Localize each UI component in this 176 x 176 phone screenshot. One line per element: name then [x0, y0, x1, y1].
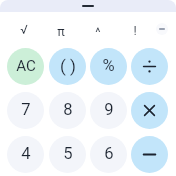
button[interactable]: AC — [7, 48, 44, 85]
staticText: 7 — [21, 100, 31, 119]
staticText: √ — [20, 22, 28, 37]
staticText: ( ) — [60, 56, 76, 76]
staticText: ^ — [95, 25, 101, 40]
button[interactable]: ^ — [87, 21, 109, 43]
button[interactable]: Multiply — [131, 92, 168, 129]
staticText: AC — [16, 57, 36, 75]
button[interactable]: 4 — [7, 136, 44, 173]
staticText: 9 — [104, 100, 114, 119]
button[interactable]: ( ) — [49, 48, 86, 85]
button[interactable]: Minus — [131, 136, 168, 173]
staticText: 5 — [63, 144, 73, 163]
button[interactable]: 6 — [90, 136, 127, 173]
staticText: 6 — [104, 144, 114, 163]
button[interactable]: More keys — [156, 23, 168, 35]
button[interactable]: 5 — [49, 136, 86, 173]
button[interactable]: π — [50, 20, 72, 42]
staticText: 4 — [21, 144, 31, 163]
button[interactable]: 7 — [7, 92, 44, 129]
staticText: 8 — [63, 100, 73, 119]
button[interactable]: 9 — [90, 92, 127, 129]
staticText: π — [57, 24, 65, 39]
button[interactable]: % — [90, 48, 127, 85]
button[interactable]: √ — [13, 18, 35, 40]
staticText: ! — [133, 23, 137, 38]
staticText: % — [102, 56, 115, 75]
button[interactable]: 8 — [49, 92, 86, 129]
button[interactable]: Divide — [131, 48, 168, 85]
button[interactable]: ! — [124, 19, 146, 41]
